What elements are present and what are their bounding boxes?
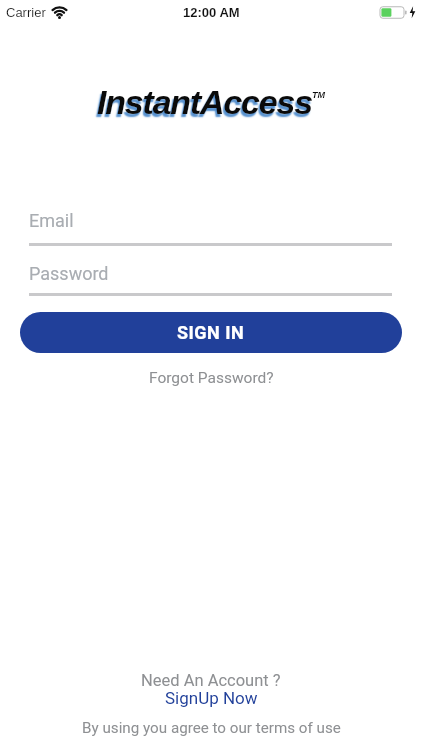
staticText: Email <box>29 210 74 231</box>
button[interactable]: SignUp Now <box>165 688 258 708</box>
staticText: SIGN IN <box>177 322 245 343</box>
button[interactable]: Password <box>29 263 392 298</box>
staticText: Carrier <box>6 5 46 20</box>
button[interactable]: Email <box>29 210 392 250</box>
staticText: Need An Account ? <box>141 671 281 690</box>
staticText: TM <box>312 90 325 100</box>
button[interactable]: SIGN IN <box>20 312 402 353</box>
staticText: Password <box>29 263 109 284</box>
button[interactable]: Forgot Password? <box>149 369 274 387</box>
staticText: By using you agree to our terms of use <box>82 719 341 737</box>
staticText: 12:00 AM <box>183 5 240 20</box>
staticText: InstantAccess <box>97 83 312 121</box>
